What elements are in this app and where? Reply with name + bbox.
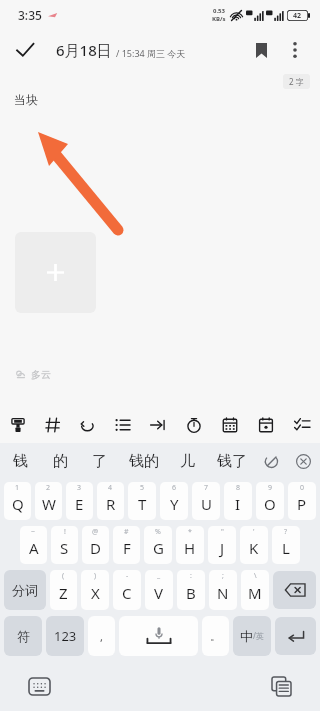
staticText: 6月18日 <box>56 40 112 60</box>
button[interactable]: ; <box>209 570 237 610</box>
staticText: 123 <box>54 627 77 645</box>
button[interactable]: Calendar <box>212 407 248 443</box>
staticText: ? <box>284 527 288 537</box>
button[interactable]: Undo <box>70 407 105 443</box>
staticText: W <box>42 494 56 514</box>
staticText: " <box>221 527 224 537</box>
button[interactable]: 0 <box>288 482 316 520</box>
button[interactable]: \ <box>241 570 269 610</box>
button[interactable]: ) <box>81 570 109 610</box>
staticText: 钱 <box>13 452 28 471</box>
staticText: X <box>91 583 100 603</box>
button[interactable]: 儿 <box>168 443 207 479</box>
staticText: N <box>217 583 229 603</box>
staticText: 3 <box>77 483 82 493</box>
button[interactable]: ~ <box>20 526 47 564</box>
button[interactable]: 的 <box>40 443 80 479</box>
button[interactable]: Done <box>8 33 42 67</box>
button[interactable]: 了 <box>80 443 119 479</box>
button[interactable]: 钱了 <box>207 443 256 479</box>
staticText: Y <box>170 494 179 514</box>
button[interactable]: Event <box>248 407 284 443</box>
button[interactable]: 分词 <box>4 570 46 610</box>
button[interactable]: , <box>88 616 115 656</box>
button[interactable]: 123 <box>46 616 84 656</box>
staticText: , <box>100 629 103 644</box>
staticText: R <box>106 494 116 514</box>
staticText: 钱了 <box>217 452 247 471</box>
button[interactable]: Bullet list <box>105 407 140 443</box>
button[interactable]: Bookmark <box>244 33 278 67</box>
button[interactable]: 7 <box>192 482 220 520</box>
staticText: # <box>124 527 129 537</box>
button[interactable]: Indent <box>140 407 176 443</box>
button[interactable]: @ <box>82 526 109 564</box>
staticText: I <box>235 494 241 514</box>
staticText: 1 <box>15 483 20 493</box>
staticText: Z <box>59 583 68 603</box>
button[interactable]: Clipboard <box>264 669 298 703</box>
button[interactable]: Checklist <box>284 407 320 443</box>
button[interactable]: More options <box>278 33 312 67</box>
button[interactable]: Hide keyboard <box>22 669 56 703</box>
staticText: 6 <box>172 483 177 493</box>
button[interactable]: % <box>144 526 172 564</box>
button[interactable]: ? <box>272 526 300 564</box>
staticText: 儿 <box>180 452 195 471</box>
staticText: \ <box>254 571 257 581</box>
button[interactable]: _ <box>145 570 173 610</box>
button[interactable]: 2 字 <box>289 76 304 87</box>
staticText: 。 <box>210 629 221 643</box>
button[interactable]: Timer <box>176 407 212 443</box>
staticText: 符 <box>17 628 30 644</box>
button[interactable]: 4 <box>97 482 124 520</box>
button[interactable]: ! <box>51 526 78 564</box>
button[interactable]: 钱 <box>0 443 40 479</box>
button[interactable]: 5 <box>128 482 156 520</box>
button[interactable]: Backspace <box>273 571 316 609</box>
staticText: / 15:34 周三 今天 <box>116 47 186 59</box>
button[interactable]: 符 <box>4 616 42 656</box>
button[interactable]: 9 <box>256 482 284 520</box>
staticText: @ <box>92 527 99 537</box>
button[interactable]: 2 <box>35 482 62 520</box>
staticText: 0.53 <box>213 7 225 15</box>
button[interactable]: 6 <box>160 482 188 520</box>
button[interactable]: 1 <box>4 482 31 520</box>
staticText: O <box>264 494 276 514</box>
staticText: 42 <box>293 11 302 21</box>
button[interactable]: * <box>176 526 204 564</box>
button[interactable]: 。 <box>202 616 229 656</box>
button[interactable]: Close keyboard <box>286 443 320 479</box>
staticText: E <box>75 494 84 514</box>
staticText: ) <box>94 571 97 581</box>
staticText: ; <box>222 571 224 581</box>
staticText: KB/s <box>212 15 226 23</box>
staticText: 3:35 <box>18 7 42 23</box>
button[interactable]: # <box>113 526 140 564</box>
staticText: 8 <box>236 483 241 493</box>
button[interactable]: Handwriting <box>256 443 286 479</box>
button[interactable]: 中 <box>233 616 271 656</box>
button[interactable]: ' <box>240 526 268 564</box>
staticText: F <box>123 538 131 558</box>
button[interactable]: ( <box>50 570 77 610</box>
button[interactable]: Space <box>119 616 198 656</box>
button[interactable]: Tag <box>35 407 70 443</box>
button[interactable]: 3 <box>66 482 93 520</box>
button[interactable]: 8 <box>224 482 252 520</box>
button[interactable]: - <box>113 570 141 610</box>
button[interactable]: Enter <box>275 617 316 655</box>
staticText: P <box>297 494 307 514</box>
staticText: ' <box>253 527 255 537</box>
button[interactable]: Format <box>0 407 35 443</box>
button[interactable]: " <box>208 526 236 564</box>
staticText: 2 字 <box>289 76 304 87</box>
staticText: * <box>188 527 192 537</box>
button[interactable]: 钱的 <box>119 443 168 479</box>
button[interactable]: : <box>177 570 205 610</box>
staticText: ! <box>64 527 66 537</box>
staticText: 多云 <box>31 368 51 381</box>
staticText: 4 <box>108 483 113 493</box>
